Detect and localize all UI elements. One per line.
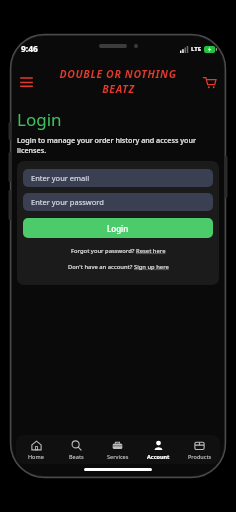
staticText: Forgot your password? [71, 247, 136, 255]
staticText: Enter your password [31, 197, 104, 207]
staticText: BEATZ [102, 82, 135, 96]
button[interactable]: Login [23, 218, 213, 238]
button[interactable]: Services [97, 440, 138, 460]
button[interactable]: Sign up here [134, 263, 169, 271]
staticText: LTE [191, 45, 202, 53]
staticText: Beats [69, 453, 84, 460]
button[interactable]: Home [16, 440, 56, 460]
staticText: Enter your email [31, 173, 90, 183]
button[interactable]: Shopping cart [199, 72, 219, 92]
button[interactable]: Enter your password [23, 193, 213, 211]
staticText: Login [17, 108, 62, 131]
staticText: DOUBLE OR NOTHING [59, 67, 177, 81]
staticText: Login to manage your order history and a… [17, 135, 219, 155]
button[interactable]: Products [179, 440, 220, 460]
staticText: Reset here [136, 247, 166, 255]
button[interactable]: Account [138, 440, 179, 460]
button[interactable]: Open navigation menu [17, 73, 35, 91]
button[interactable]: Enter your email [23, 169, 213, 187]
staticText: Login [107, 223, 129, 234]
staticText: Don't have an account? [68, 263, 134, 271]
staticText: Sign up here [134, 263, 169, 271]
staticText: Account [147, 453, 170, 460]
staticText: 9:46 [21, 43, 38, 55]
staticText: Home [28, 453, 44, 460]
button[interactable]: Beats [56, 440, 97, 460]
staticText: Services [107, 453, 129, 460]
button[interactable]: Reset here [136, 247, 166, 255]
staticText: Products [188, 453, 212, 460]
